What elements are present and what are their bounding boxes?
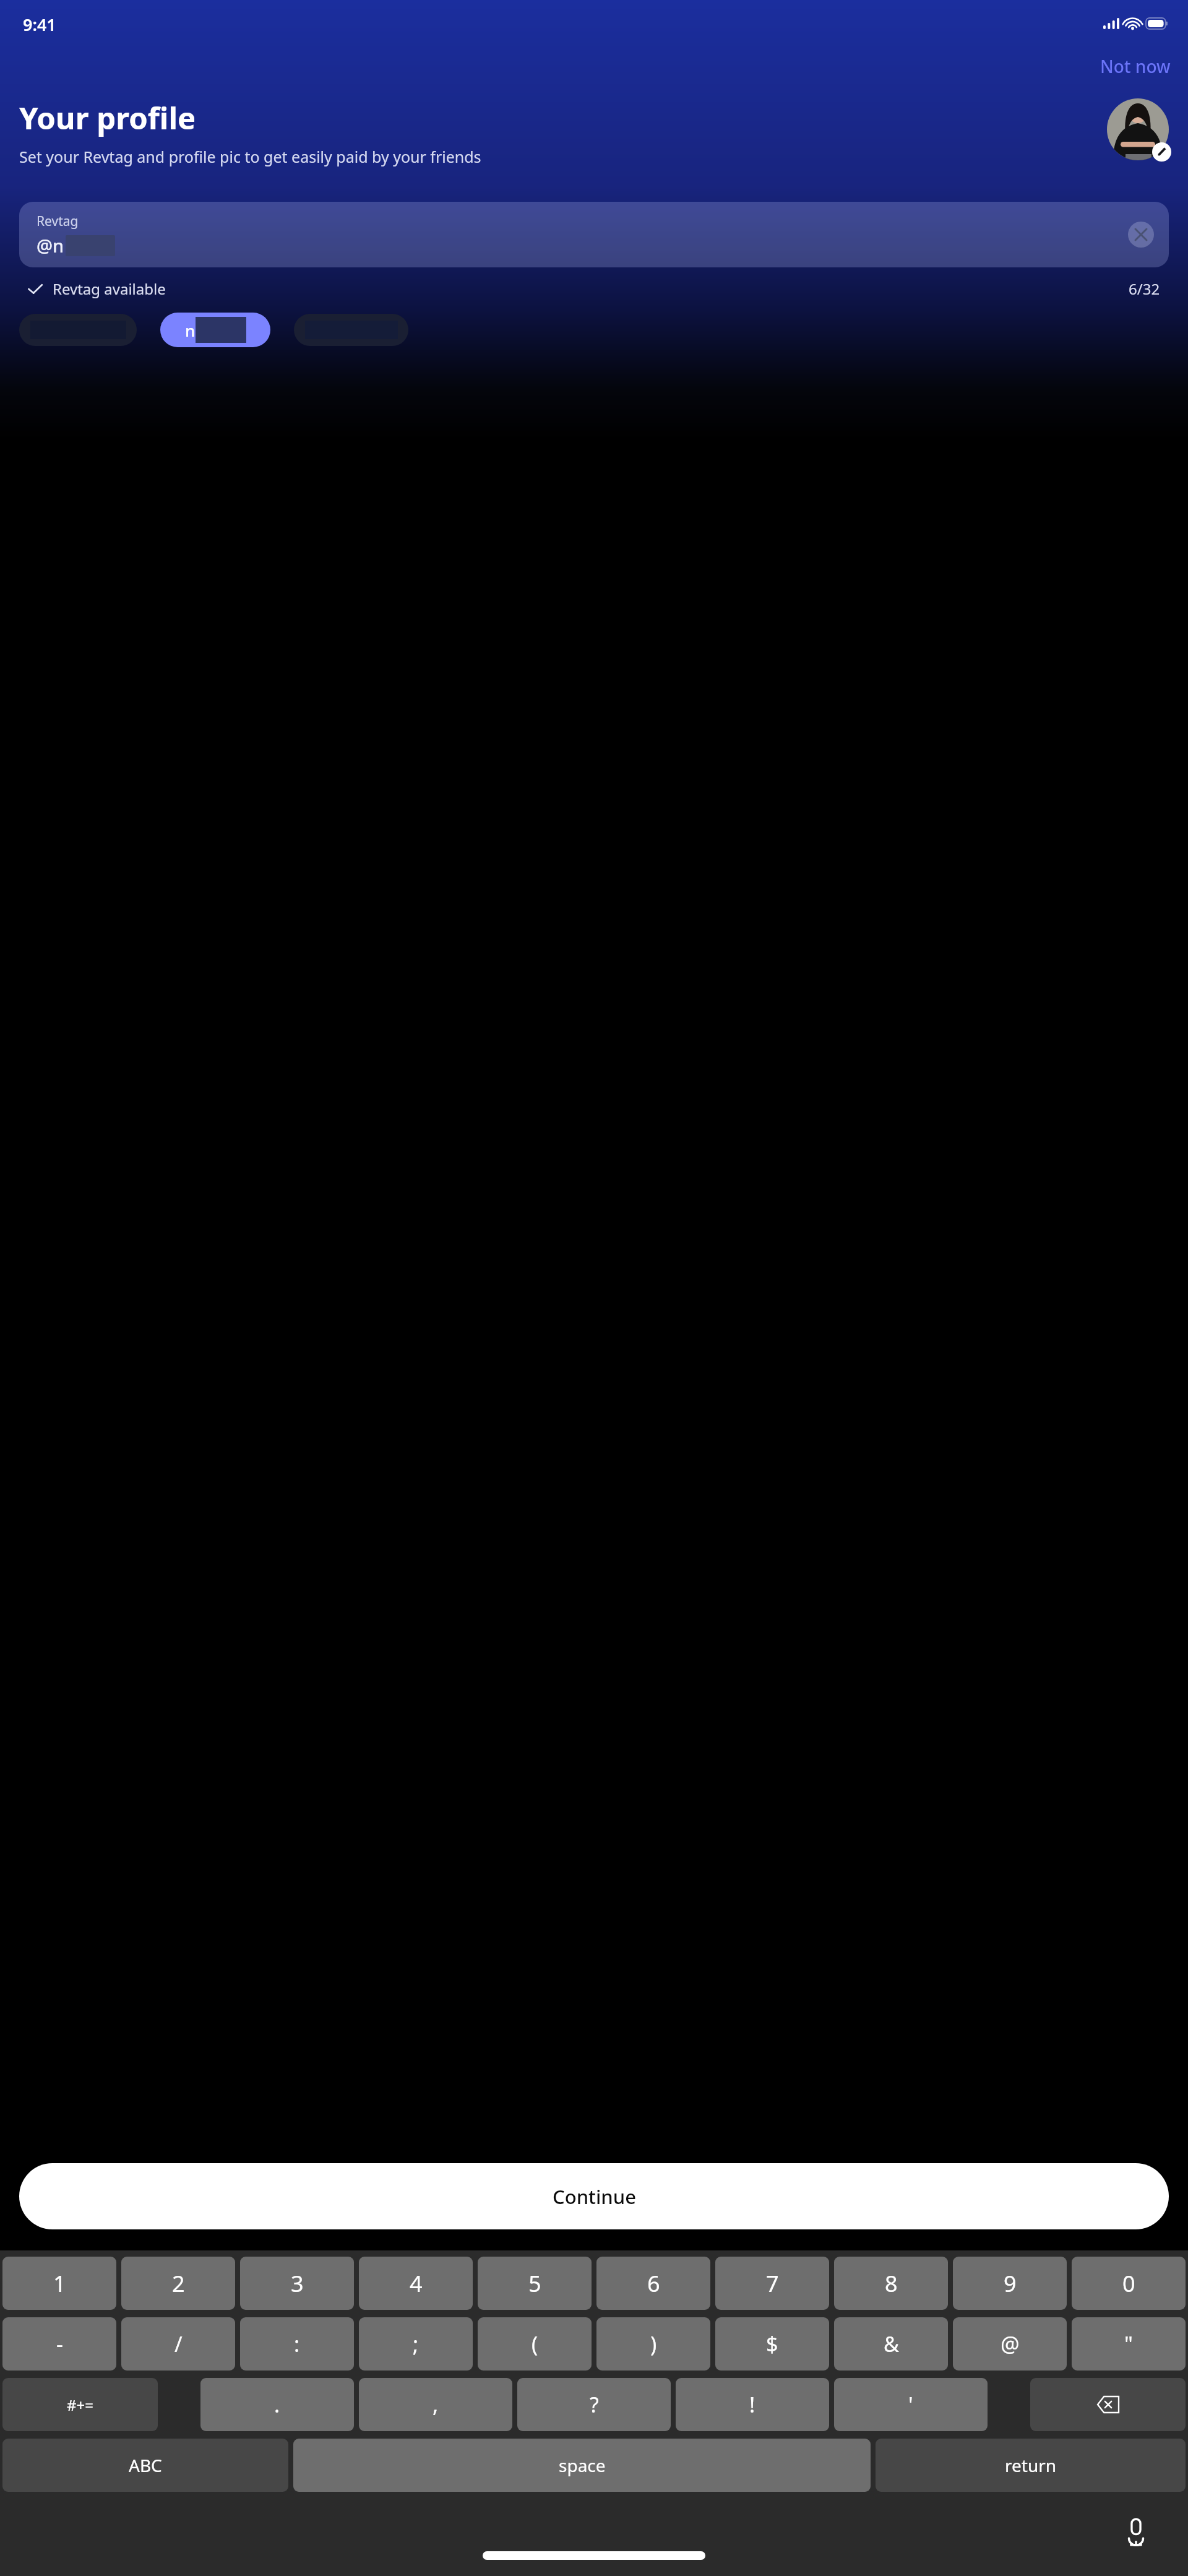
staticText: 3 — [291, 2268, 304, 2299]
staticText: : — [294, 2330, 300, 2358]
button[interactable]: : — [240, 2317, 354, 2371]
button[interactable] — [19, 314, 137, 346]
button[interactable]: Backspace — [1030, 2378, 1186, 2431]
staticText: ! — [749, 2390, 755, 2419]
staticText: & — [884, 2330, 899, 2358]
button[interactable]: n — [160, 313, 270, 347]
staticText: ABC — [129, 2453, 162, 2477]
button[interactable]: 0 — [1072, 2257, 1186, 2310]
button[interactable]: Continue — [19, 2163, 1169, 2229]
button[interactable]: @ — [953, 2317, 1067, 2371]
button[interactable]: " — [1072, 2317, 1186, 2371]
button[interactable]: Dictate — [1116, 2513, 1156, 2552]
staticText: Revtag available — [53, 279, 166, 299]
staticText: ) — [650, 2330, 657, 2358]
staticText: - — [56, 2330, 63, 2358]
staticText: / — [174, 2330, 183, 2358]
button[interactable]: ! — [676, 2378, 829, 2431]
button[interactable]: 4 — [359, 2257, 473, 2310]
staticText: 2 — [172, 2268, 185, 2299]
staticText: Your profile — [19, 97, 196, 139]
button[interactable]: 8 — [834, 2257, 948, 2310]
button[interactable]: - — [2, 2317, 116, 2371]
staticText: ' — [908, 2390, 913, 2419]
staticText: Revtag — [37, 212, 79, 230]
button[interactable]: return — [876, 2439, 1186, 2492]
button[interactable]: . — [200, 2378, 354, 2431]
button[interactable]: / — [121, 2317, 235, 2371]
staticText: ? — [590, 2390, 599, 2419]
button[interactable]: ' — [834, 2378, 988, 2431]
button[interactable]: $ — [715, 2317, 829, 2371]
button[interactable] — [294, 314, 408, 346]
staticText: 9 — [1004, 2268, 1017, 2299]
button[interactable]: Not now — [1100, 54, 1171, 78]
staticText: return — [1005, 2453, 1057, 2477]
staticText: 7 — [766, 2268, 779, 2299]
button[interactable]: ? — [517, 2378, 671, 2431]
button[interactable]: ) — [596, 2317, 710, 2371]
staticText: @ — [1001, 2330, 1020, 2358]
button[interactable]: 1 — [2, 2257, 116, 2310]
staticText: $ — [766, 2330, 778, 2358]
button[interactable]: ( — [478, 2317, 592, 2371]
button[interactable]: & — [834, 2317, 948, 2371]
staticText: Continue — [553, 2184, 636, 2210]
staticText: space — [559, 2453, 606, 2477]
staticText: ( — [532, 2330, 538, 2358]
staticText: @n — [37, 233, 64, 257]
staticText: Not now — [1100, 54, 1171, 78]
staticText: 0 — [1122, 2268, 1135, 2299]
staticText: #+= — [67, 2395, 93, 2415]
button[interactable]: 5 — [478, 2257, 592, 2310]
staticText: . — [274, 2390, 280, 2419]
staticText: n — [185, 319, 196, 341]
staticText: 5 — [528, 2268, 541, 2299]
staticText: 6/32 — [1129, 279, 1160, 299]
staticText: 4 — [410, 2268, 423, 2299]
staticText: 1 — [53, 2268, 66, 2299]
button[interactable]: 6 — [596, 2257, 710, 2310]
button[interactable]: Edit profile picture — [1107, 98, 1169, 160]
staticText: 6 — [647, 2268, 660, 2299]
staticText: 8 — [885, 2268, 898, 2299]
button[interactable]: ABC — [2, 2439, 288, 2492]
staticText: Set your Revtag and profile pic to get e… — [19, 146, 994, 167]
button[interactable]: #+= — [2, 2378, 158, 2431]
button[interactable]: ; — [359, 2317, 473, 2371]
button[interactable]: 3 — [240, 2257, 354, 2310]
staticText: ; — [413, 2330, 419, 2358]
button[interactable]: 7 — [715, 2257, 829, 2310]
staticText: , — [433, 2390, 439, 2419]
button[interactable]: 2 — [121, 2257, 235, 2310]
staticText: " — [1124, 2330, 1133, 2358]
button[interactable]: Clear — [1128, 222, 1154, 248]
button[interactable]: Edit — [1152, 142, 1171, 162]
staticText: 9:41 — [23, 13, 56, 36]
button[interactable]: , — [359, 2378, 512, 2431]
button[interactable]: 9 — [953, 2257, 1067, 2310]
button[interactable]: space — [293, 2439, 871, 2492]
button[interactable]: Revtag — [19, 202, 1169, 267]
